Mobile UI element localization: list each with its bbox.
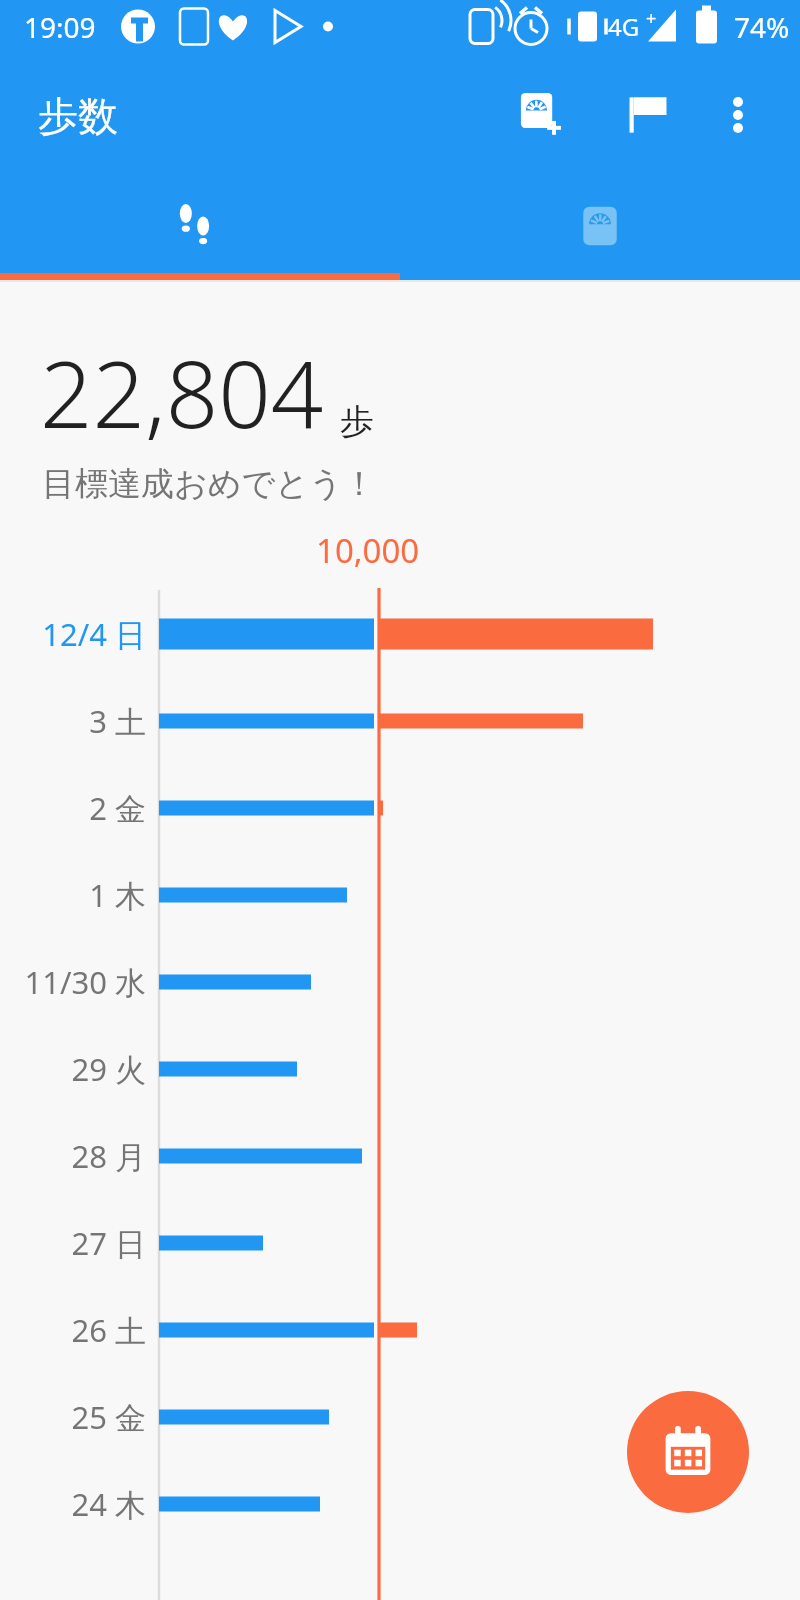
button[interactable]: 12/4 日 xyxy=(0,606,146,662)
staticText: 29 火 xyxy=(71,1048,146,1090)
staticText: 目標達成おめでとう！ xyxy=(42,463,376,505)
button[interactable]: 26 土 xyxy=(0,1302,146,1358)
button[interactable]: 27 日 xyxy=(0,1215,146,1271)
staticText: 歩数 xyxy=(38,91,118,141)
staticText: 3 土 xyxy=(89,700,146,742)
button[interactable]: 29 火 xyxy=(0,1041,146,1097)
staticText: 2 金 xyxy=(89,787,146,829)
button[interactable]: 24 木 xyxy=(0,1476,146,1532)
button[interactable]: 1 木 xyxy=(0,867,146,923)
staticText: 歩 xyxy=(340,400,374,443)
button[interactable]: 2 金 xyxy=(0,780,146,836)
button[interactable]: 体重タブ xyxy=(400,178,800,273)
staticText: 11/30 水 xyxy=(24,961,146,1003)
button[interactable]: 目標 xyxy=(610,77,686,153)
staticText: 19:09 xyxy=(24,8,96,46)
staticText: 24 木 xyxy=(71,1483,146,1525)
staticText: 22,804 xyxy=(40,330,324,455)
button[interactable]: 体重を追加 xyxy=(505,77,581,153)
button[interactable]: 28 月 xyxy=(0,1128,146,1184)
staticText: 10,000 xyxy=(316,528,420,573)
button[interactable]: カレンダー xyxy=(627,1391,749,1513)
button[interactable]: 25 金 xyxy=(0,1389,146,1445)
button[interactable]: 11/30 水 xyxy=(0,954,146,1010)
staticText: 25 金 xyxy=(71,1396,146,1438)
staticText: 4G xyxy=(608,10,640,43)
staticText: 74% xyxy=(734,8,790,46)
staticText: + xyxy=(646,6,657,31)
staticText: 27 日 xyxy=(71,1222,146,1264)
button[interactable]: 3 土 xyxy=(0,693,146,749)
button[interactable]: その他のオプション xyxy=(700,77,776,153)
staticText: 1 木 xyxy=(89,874,146,916)
staticText: 28 月 xyxy=(71,1135,146,1177)
staticText: 12/4 日 xyxy=(42,613,146,655)
staticText: 26 土 xyxy=(71,1309,146,1351)
button[interactable]: 歩数タブ xyxy=(0,178,400,273)
